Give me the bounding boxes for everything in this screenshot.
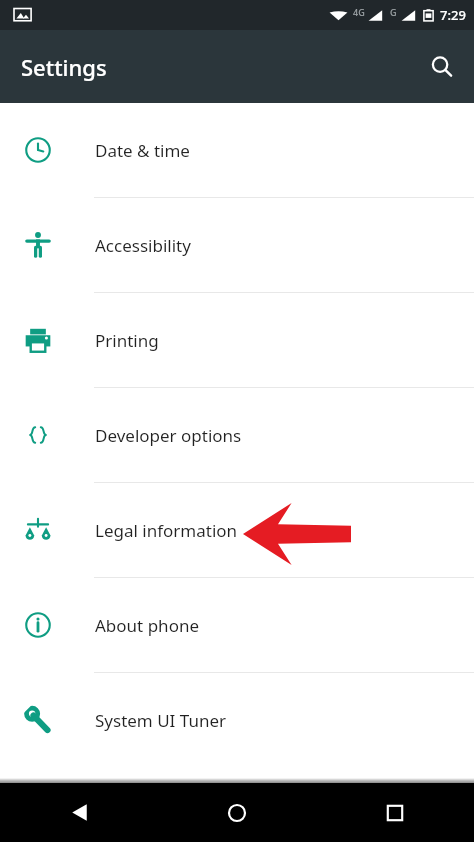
staticText: About phone — [95, 614, 200, 637]
staticText: Settings — [21, 52, 107, 82]
staticText: 7:29 — [440, 6, 466, 24]
staticText: G — [390, 6, 397, 18]
button[interactable]: Back — [0, 783, 158, 842]
button[interactable]: Recent apps — [316, 783, 474, 842]
button[interactable]: Accessibility — [0, 198, 474, 292]
staticText: Accessibility — [95, 234, 191, 257]
staticText: Developer options — [95, 424, 242, 447]
staticText: Legal information — [95, 519, 238, 542]
button[interactable]: Home — [158, 783, 316, 842]
button[interactable]: System UI Tuner — [0, 673, 474, 767]
button[interactable]: About phone — [0, 578, 474, 672]
staticText: Date & time — [95, 139, 190, 162]
button[interactable]: Developer options — [0, 388, 474, 482]
staticText: Printing — [95, 329, 159, 352]
button[interactable]: Legal information — [0, 483, 474, 577]
staticText: 4G — [353, 6, 365, 18]
button[interactable]: Date & time — [0, 103, 474, 197]
staticText: System UI Tuner — [95, 709, 227, 732]
button[interactable]: Printing — [0, 293, 474, 387]
button[interactable]: Search — [418, 43, 466, 91]
